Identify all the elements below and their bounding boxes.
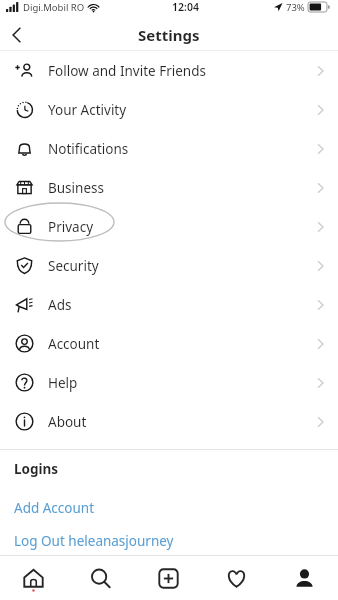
button[interactable]: Follow and Invite Friends (0, 51, 338, 90)
button[interactable]: Account (0, 324, 338, 363)
button[interactable]: Business (0, 168, 338, 207)
staticText: 73% (286, 1, 305, 14)
staticText: Settings (138, 25, 200, 45)
button[interactable]: Profile (270, 556, 338, 600)
button[interactable]: About (0, 402, 338, 441)
button[interactable]: Your Activity (0, 90, 338, 129)
staticText: Log Out heleanasjourney (14, 532, 174, 550)
staticText: Business (48, 179, 104, 197)
button[interactable]: Back (0, 20, 34, 50)
staticText: Logins (14, 460, 59, 478)
button[interactable]: Ads (0, 285, 338, 324)
button[interactable]: Home (0, 556, 67, 600)
button[interactable]: Security (0, 246, 338, 285)
staticText: 12:04 (172, 0, 199, 14)
button[interactable]: Activity (202, 556, 270, 600)
staticText: Notifications (48, 140, 129, 158)
button[interactable]: New Post (134, 556, 202, 600)
staticText: Help (48, 374, 78, 392)
button[interactable]: Help (0, 363, 338, 402)
staticText: Security (48, 257, 99, 275)
button[interactable]: Privacy (0, 207, 338, 246)
staticText: Your Activity (48, 101, 127, 119)
button[interactable]: Log Out heleanasjourney (0, 527, 338, 555)
staticText: Follow and Invite Friends (48, 62, 206, 80)
staticText: Privacy (48, 218, 94, 236)
staticText: Digi.Mobil RO (23, 1, 85, 14)
button[interactable]: Notifications (0, 129, 338, 168)
staticText: About (48, 413, 87, 431)
staticText: Add Account (14, 499, 95, 517)
staticText: Account (48, 335, 100, 353)
button[interactable]: Search (67, 556, 134, 600)
button[interactable]: Add Account (0, 488, 338, 527)
staticText: Ads (48, 296, 72, 314)
